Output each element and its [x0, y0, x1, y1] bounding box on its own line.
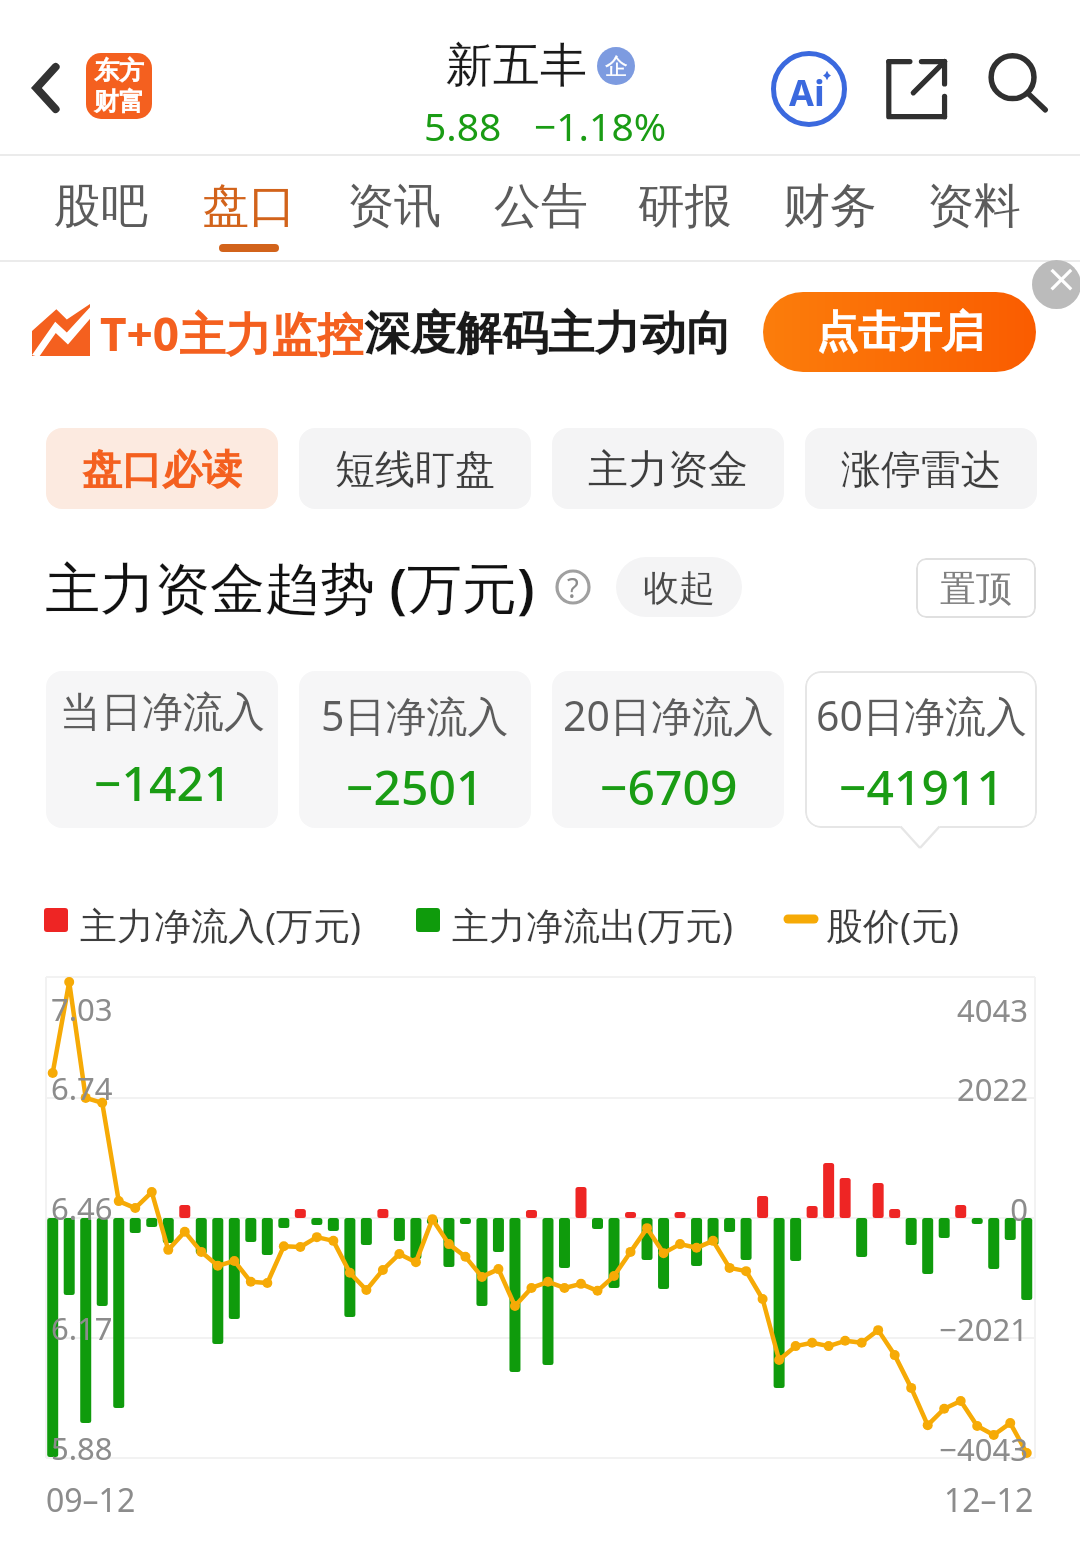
button[interactable]: Search — [984, 50, 1052, 118]
staticText: 2022 — [957, 1068, 1028, 1110]
button[interactable]: 当日净流入 — [46, 671, 278, 828]
staticText: 点击开启 — [816, 306, 984, 359]
staticText: 60日净流入 — [816, 687, 1027, 743]
staticText: 0 — [1010, 1188, 1028, 1230]
staticText: 收起 — [643, 565, 715, 610]
staticText: −1421 — [94, 750, 232, 815]
staticText: 09–12 — [46, 1478, 136, 1522]
button[interactable]: 公告 — [477, 166, 605, 260]
staticText: 东方 — [94, 55, 144, 86]
staticText: 6.74 — [51, 1067, 113, 1109]
button[interactable]: 5日净流入 — [299, 671, 531, 828]
staticText: 财富 — [94, 86, 144, 117]
button[interactable]: 收起 — [616, 557, 742, 617]
staticText: 4043 — [957, 989, 1028, 1031]
staticText: 7.03 — [51, 988, 113, 1030]
staticText: 公告 — [494, 177, 588, 236]
staticText: ? — [567, 569, 579, 605]
staticText: −2021 — [939, 1308, 1028, 1350]
staticText: 主力净流入(万元) — [80, 899, 362, 950]
staticText: 涨停雷达 — [841, 444, 1001, 494]
staticText: 深度解码主力动向 — [364, 305, 732, 363]
button[interactable]: Back — [22, 55, 70, 121]
staticText: −6709 — [600, 754, 738, 819]
button[interactable]: 60日净流入 — [805, 671, 1037, 828]
button[interactable]: 短线盯盘 — [299, 428, 531, 509]
staticText: 短线盯盘 — [335, 444, 495, 494]
button[interactable]: 点击开启 — [763, 292, 1036, 372]
staticText: 主力资金趋势 (万元) — [45, 549, 535, 624]
button[interactable]: 盘口必读 — [46, 428, 278, 509]
staticText: −2501 — [346, 754, 484, 819]
button[interactable]: 研报 — [621, 166, 749, 260]
button[interactable]: 股吧 — [37, 166, 165, 260]
staticText: −4043 — [939, 1428, 1028, 1470]
staticText: 新五丰 — [446, 36, 587, 95]
button[interactable]: 主力资金 — [552, 428, 784, 509]
staticText: 6.46 — [51, 1187, 113, 1229]
button[interactable]: AI assistant — [771, 51, 847, 127]
staticText: 研报 — [638, 177, 732, 236]
staticText: 资讯 — [347, 177, 441, 236]
staticText: 盘口 — [202, 177, 296, 236]
staticText: 财务 — [783, 177, 877, 236]
staticText: 20日净流入 — [563, 687, 774, 743]
staticText: Ai — [789, 68, 825, 117]
staticText: 主力资金 — [588, 444, 748, 494]
button[interactable]: 盘口 — [185, 166, 313, 260]
staticText: 主力净流出(万元) — [452, 899, 734, 950]
staticText: 5日净流入 — [321, 687, 509, 743]
staticText: 股吧 — [54, 177, 148, 236]
staticText: −1.18% — [534, 99, 667, 152]
staticText: 6.17 — [51, 1307, 113, 1349]
staticText: 置顶 — [940, 566, 1012, 611]
button[interactable]: East Money logo — [86, 53, 152, 119]
staticText: 当日净流入 — [60, 687, 265, 739]
staticText: 盘口必读 — [82, 444, 242, 494]
staticText: 5.88 — [51, 1427, 113, 1469]
staticText: 股价(元) — [826, 899, 960, 950]
button[interactable]: 资料 — [910, 166, 1038, 260]
button[interactable]: 涨停雷达 — [805, 428, 1037, 509]
staticText: 资料 — [927, 177, 1021, 236]
staticText: T+0主力监控 — [100, 302, 364, 365]
staticText: 12–12 — [944, 1478, 1034, 1522]
button[interactable]: 20日净流入 — [552, 671, 784, 828]
button[interactable]: Help — [555, 569, 591, 605]
staticText: 企 — [605, 52, 628, 81]
button[interactable]: Close banner — [1032, 260, 1080, 309]
button[interactable]: 资讯 — [330, 166, 458, 260]
button[interactable]: Share — [882, 50, 950, 118]
button[interactable]: 置顶 — [916, 558, 1036, 618]
staticText: 5.88 — [424, 99, 502, 152]
staticText: −41911 — [839, 754, 1004, 819]
button[interactable]: 财务 — [766, 166, 894, 260]
